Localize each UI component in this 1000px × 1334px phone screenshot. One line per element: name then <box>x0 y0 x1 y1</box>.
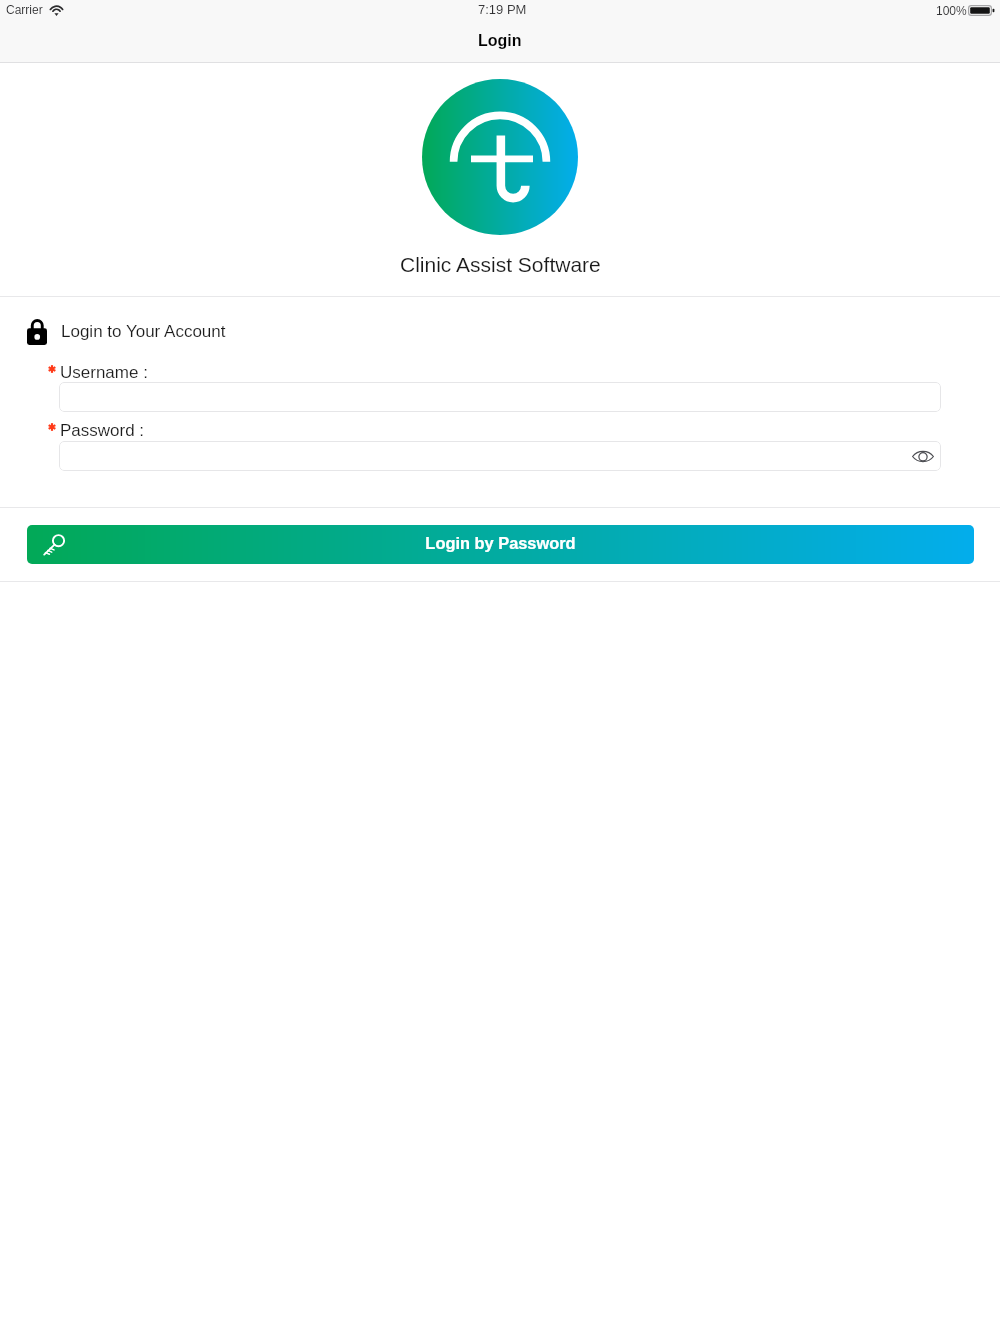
button[interactable]: Login by Password <box>27 525 974 564</box>
button[interactable]: Show password <box>59 441 941 471</box>
staticText: Login by Password <box>425 534 576 552</box>
staticText: Carrier <box>6 3 43 16</box>
button[interactable]: Show password <box>908 442 937 471</box>
staticText: 7:19 PM <box>478 2 527 17</box>
staticText: 100% <box>936 4 967 17</box>
staticText: Login <box>478 32 522 50</box>
staticText: Login to Your Account <box>61 322 226 341</box>
staticText: Username : <box>60 363 148 382</box>
staticText: Clinic Assist Software <box>400 253 601 276</box>
staticText: Password : <box>60 421 145 440</box>
button[interactable] <box>59 382 941 412</box>
